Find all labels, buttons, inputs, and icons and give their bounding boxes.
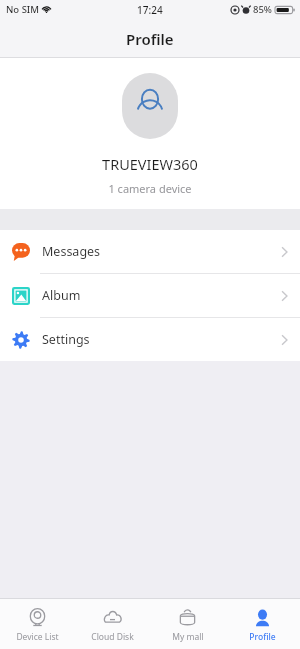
staticText: Profile [126,29,174,49]
button[interactable]: Settings [0,318,300,361]
button[interactable]: Album [0,274,300,317]
staticText: 85% [253,3,272,16]
staticText: TRUEVIEW360 [102,154,198,174]
staticText: No SIM [6,3,39,16]
button[interactable]: Profile [225,602,300,647]
staticText: 17:24 [137,3,163,17]
staticText: Cloud Disk [91,631,134,643]
button[interactable]: Device List [0,602,75,647]
staticText: Profile [249,631,276,643]
button[interactable]: Messages [0,230,300,273]
staticText: Album [42,287,81,304]
staticText: 1 camera device [108,181,192,196]
button[interactable]: My mall [150,602,225,647]
staticText: Device List [16,631,59,643]
staticText: My mall [172,631,204,643]
button[interactable]: Cloud Disk [75,602,150,647]
staticText: Settings [42,331,90,348]
staticText: Messages [42,243,101,260]
